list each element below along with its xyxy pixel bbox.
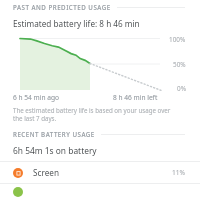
staticText: The estimated battery life is based on y… <box>13 106 178 122</box>
button[interactable]: Screen <box>0 162 200 183</box>
staticText: 0% <box>177 84 186 93</box>
staticText: 11% <box>172 168 186 177</box>
staticText: 8 h 46 min left <box>113 93 158 102</box>
staticText: Estimated battery life: 8 h 46 min <box>13 18 140 29</box>
staticText: RECENT BATTERY USAGE <box>13 130 95 138</box>
staticText: 50% <box>173 60 186 69</box>
button[interactable]: Android OS battery usage <box>0 184 200 200</box>
staticText: PAST AND PREDICTED USAGE <box>13 3 111 11</box>
staticText: 100% <box>169 35 186 44</box>
staticText: Screen <box>33 167 59 178</box>
staticText: 6 h 54 min ago <box>13 93 59 102</box>
staticText: 6h 54m 1s on battery <box>13 145 97 156</box>
